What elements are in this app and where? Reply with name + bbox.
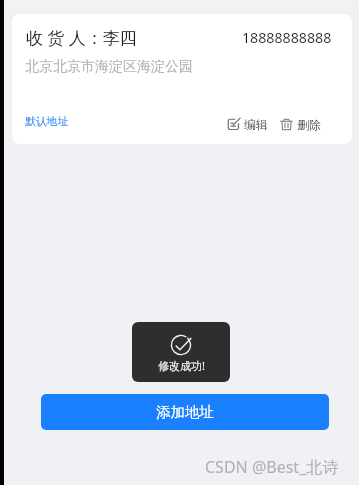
button[interactable]: 默认地址 (25, 115, 69, 129)
staticText: 删除 (297, 117, 321, 132)
button[interactable]: Edit (227, 117, 268, 132)
staticText: CSDN @Best_北诗 (205, 456, 339, 478)
staticText: 添加地址 (156, 403, 214, 421)
button[interactable]: 添加地址 (41, 394, 329, 430)
staticText: 北京北京市海淀区海淀公园 (25, 58, 193, 76)
staticText: 修改成功! (158, 358, 205, 373)
staticText: 收 货 人：李四 (26, 26, 137, 49)
button[interactable]: 收 货 人：李四 (12, 14, 352, 144)
other: Edit (227, 118, 241, 132)
staticText: 编辑 (244, 117, 268, 132)
staticText: 18888888888 (242, 28, 332, 47)
button[interactable]: Delete (280, 117, 321, 132)
other: Delete (280, 118, 293, 131)
